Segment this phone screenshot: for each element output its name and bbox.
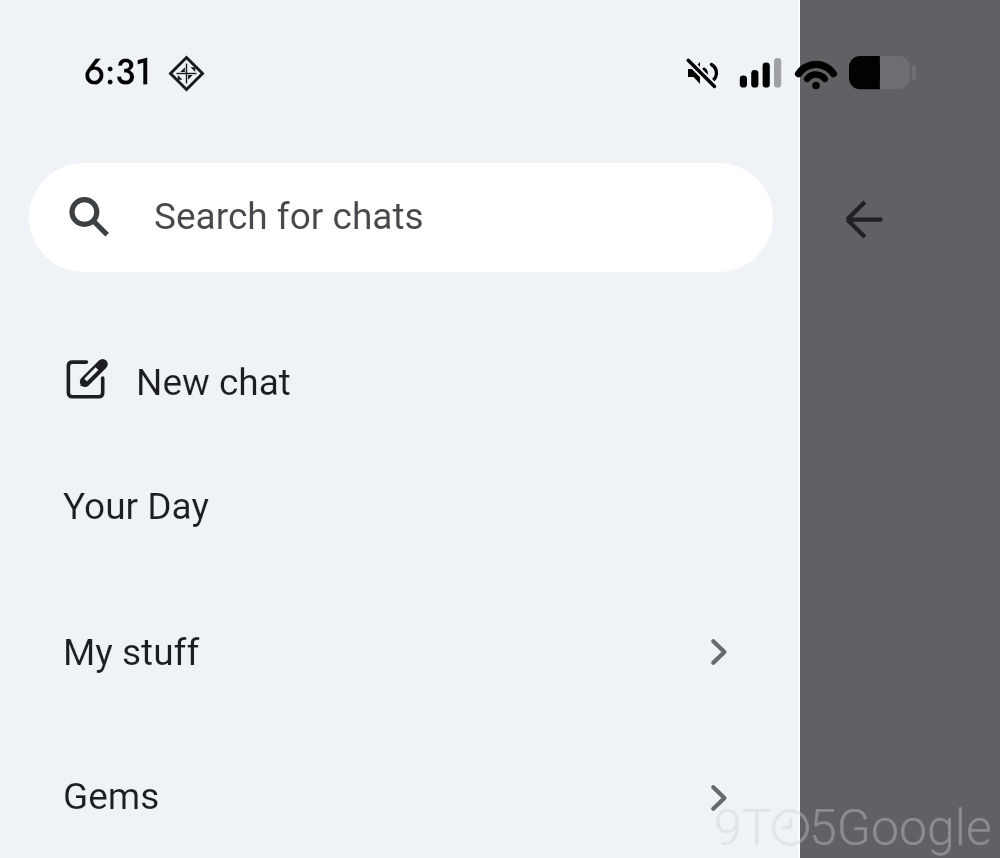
staticText: 5Google — [809, 799, 992, 858]
button[interactable]: Back — [823, 196, 905, 244]
button[interactable]: Your Day — [0, 455, 800, 567]
staticText: Gems — [63, 775, 160, 818]
staticText: 6:31 — [84, 45, 152, 97]
staticText: New chat — [136, 361, 291, 404]
button[interactable]: Close navigation drawer — [800, 0, 1000, 858]
staticText: Your Day — [63, 485, 209, 528]
button[interactable]: Gems — [0, 745, 800, 857]
button[interactable]: Search for chats — [29, 163, 773, 272]
staticText: 9T — [714, 799, 772, 858]
button[interactable]: My stuff — [0, 601, 800, 713]
staticText: Search for chats — [154, 195, 424, 238]
staticText: My stuff — [63, 631, 200, 674]
button[interactable]: New chat — [0, 325, 800, 437]
